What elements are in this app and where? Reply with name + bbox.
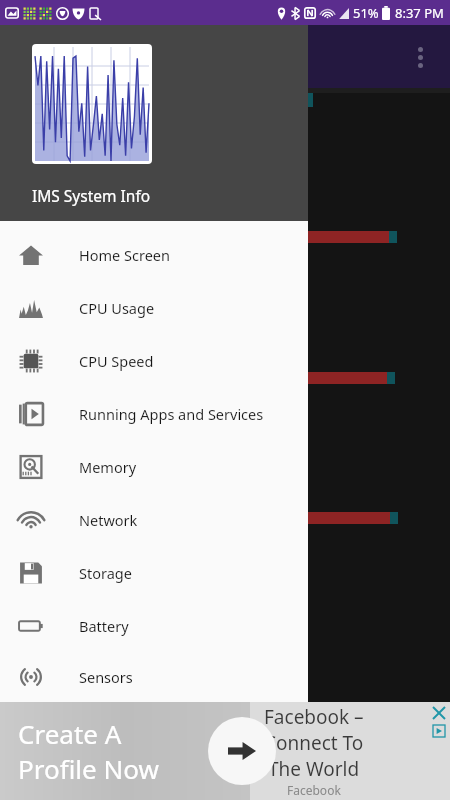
- staticText: Memory: [79, 457, 137, 477]
- staticText: Facebook: [287, 782, 341, 798]
- staticText: 8:37 PM: [395, 4, 444, 22]
- staticText: Profile Now: [18, 751, 159, 786]
- button[interactable]: Facebook –: [250, 702, 450, 800]
- staticText: Running Apps and Services: [79, 404, 264, 424]
- staticText: Facebook –: [264, 704, 364, 730]
- staticText: Create A: [18, 716, 122, 751]
- button[interactable]: Running Apps and Services: [0, 387, 308, 440]
- staticText: Storage: [79, 563, 132, 583]
- button[interactable]: CPU Speed: [0, 334, 308, 387]
- button[interactable]: CPU Usage: [0, 281, 308, 334]
- button[interactable]: Open ad: [208, 717, 276, 785]
- button[interactable]: Memory: [0, 440, 308, 493]
- button[interactable]: Sensors: [0, 652, 308, 702]
- staticText: Battery: [79, 616, 129, 636]
- button[interactable]: Home Screen: [0, 228, 308, 281]
- button[interactable]: IMS System Info: [0, 25, 308, 221]
- button[interactable]: More options: [400, 37, 440, 77]
- staticText: 51%: [353, 4, 379, 22]
- staticText: The World: [268, 756, 360, 782]
- staticText: IMS System Info: [32, 185, 151, 206]
- button[interactable]: Ad choices: [430, 722, 448, 740]
- button[interactable]: Close ad: [430, 704, 448, 722]
- staticText: Connect To: [264, 730, 364, 756]
- staticText: Sensors: [79, 667, 133, 687]
- button[interactable]: Storage: [0, 546, 308, 599]
- button[interactable]: Battery: [0, 599, 308, 652]
- staticText: Network: [79, 510, 138, 530]
- button[interactable]: Network: [0, 493, 308, 546]
- button[interactable]: Create A: [0, 702, 250, 800]
- staticText: Home Screen: [79, 245, 170, 265]
- staticText: CPU Usage: [79, 298, 155, 318]
- staticText: CPU Speed: [79, 351, 154, 371]
